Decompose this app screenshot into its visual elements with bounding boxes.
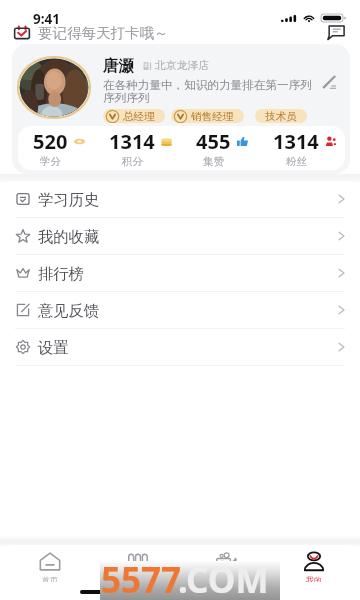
button[interactable]: 意见反馈	[0, 292, 360, 328]
staticText: 唐灏	[103, 56, 134, 76]
staticText: 520	[33, 128, 68, 155]
staticText: 技术员	[265, 110, 297, 123]
staticText: 在各种力量中，知识的力量排在第一序列序列序列	[103, 78, 313, 105]
button[interactable]: Messages	[325, 24, 347, 41]
button[interactable]: 455	[181, 126, 263, 170]
staticText: 课程	[130, 575, 146, 582]
staticText: 北京龙泽店	[155, 59, 209, 73]
button[interactable]: 设置	[0, 329, 360, 365]
staticText: 5577	[101, 556, 182, 595]
staticText: 学分	[40, 155, 61, 168]
staticText: 要记得每天打卡哦～	[38, 24, 169, 41]
button[interactable]: 直播	[182, 552, 270, 582]
button[interactable]: 我的收藏	[0, 218, 360, 254]
staticText: .COM	[178, 556, 269, 595]
button[interactable]: 1314	[263, 126, 345, 170]
staticText: 直播	[218, 575, 234, 582]
button[interactable]: 520	[18, 126, 99, 170]
staticText: 学习历史	[38, 190, 100, 209]
staticText: 积分	[122, 155, 143, 168]
staticText: 9:41	[33, 10, 60, 28]
button[interactable]: 学习历史	[0, 181, 360, 217]
button[interactable]: 课程	[94, 552, 182, 582]
staticText: 455	[196, 128, 231, 155]
button[interactable]: 1314	[99, 126, 181, 170]
staticText: 粉丝	[286, 155, 307, 168]
staticText: 我的	[306, 575, 322, 582]
staticText: 集赞	[203, 155, 224, 168]
staticText: 我的收藏	[38, 227, 100, 246]
button[interactable]: Edit profile	[322, 75, 337, 90]
staticText: 1314	[273, 128, 319, 155]
button[interactable]: 我的	[270, 552, 358, 582]
staticText: 排行榜	[38, 264, 84, 283]
staticText: 首页	[42, 575, 58, 582]
staticText: 销售经理	[191, 110, 234, 123]
staticText: 意见反馈	[38, 301, 100, 320]
button[interactable]: 排行榜	[0, 255, 360, 291]
staticText: 1314	[109, 128, 155, 155]
button[interactable]: 首页	[5, 552, 94, 582]
staticText: 总经理	[123, 110, 155, 123]
staticText: 设置	[38, 338, 69, 357]
